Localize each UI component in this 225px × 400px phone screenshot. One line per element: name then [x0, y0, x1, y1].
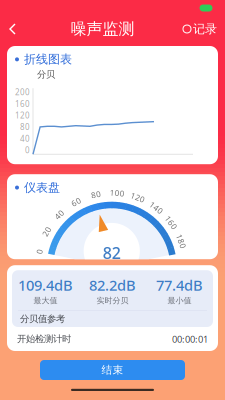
- staticText: 记录: [193, 22, 217, 36]
- staticText: 实时分贝: [96, 296, 128, 305]
- staticText: 180: [174, 236, 189, 247]
- staticText: 折线图表: [24, 52, 72, 67]
- staticText: 77.4dB: [156, 275, 203, 295]
- staticText: 140: [149, 202, 164, 213]
- button[interactable]: 记录: [175, 16, 225, 42]
- staticText: 分贝值参考: [20, 313, 65, 325]
- staticText: 40: [54, 209, 64, 220]
- button[interactable]: 结束: [40, 360, 185, 380]
- staticText: 最小值: [167, 296, 191, 305]
- staticText: 0: [37, 246, 42, 257]
- staticText: 分贝: [37, 69, 55, 80]
- staticText: 0: [25, 145, 30, 155]
- staticText: 200: [15, 87, 30, 97]
- staticText: 20: [42, 226, 52, 237]
- staticText: 160: [15, 98, 30, 109]
- staticText: 100: [110, 188, 125, 198]
- staticText: 00:00:01: [172, 333, 208, 345]
- button[interactable]: Back: [0, 16, 30, 42]
- staticText: 噪声监测: [70, 19, 134, 39]
- staticText: 109.4dB: [18, 275, 73, 295]
- staticText: 40: [20, 133, 30, 144]
- staticText: 最大值: [33, 296, 57, 305]
- staticText: 160: [164, 217, 179, 228]
- staticText: 120: [130, 192, 145, 203]
- staticText: 80: [91, 189, 101, 200]
- staticText: 结束: [101, 363, 123, 377]
- staticText: 120: [15, 110, 30, 121]
- staticText: 82.2dB: [89, 275, 136, 295]
- staticText: 80: [20, 122, 30, 132]
- staticText: 仪表盘: [24, 180, 60, 195]
- staticText: 60: [71, 196, 81, 207]
- staticText: 开始检测计时: [17, 333, 71, 345]
- staticText: 82: [103, 242, 121, 263]
